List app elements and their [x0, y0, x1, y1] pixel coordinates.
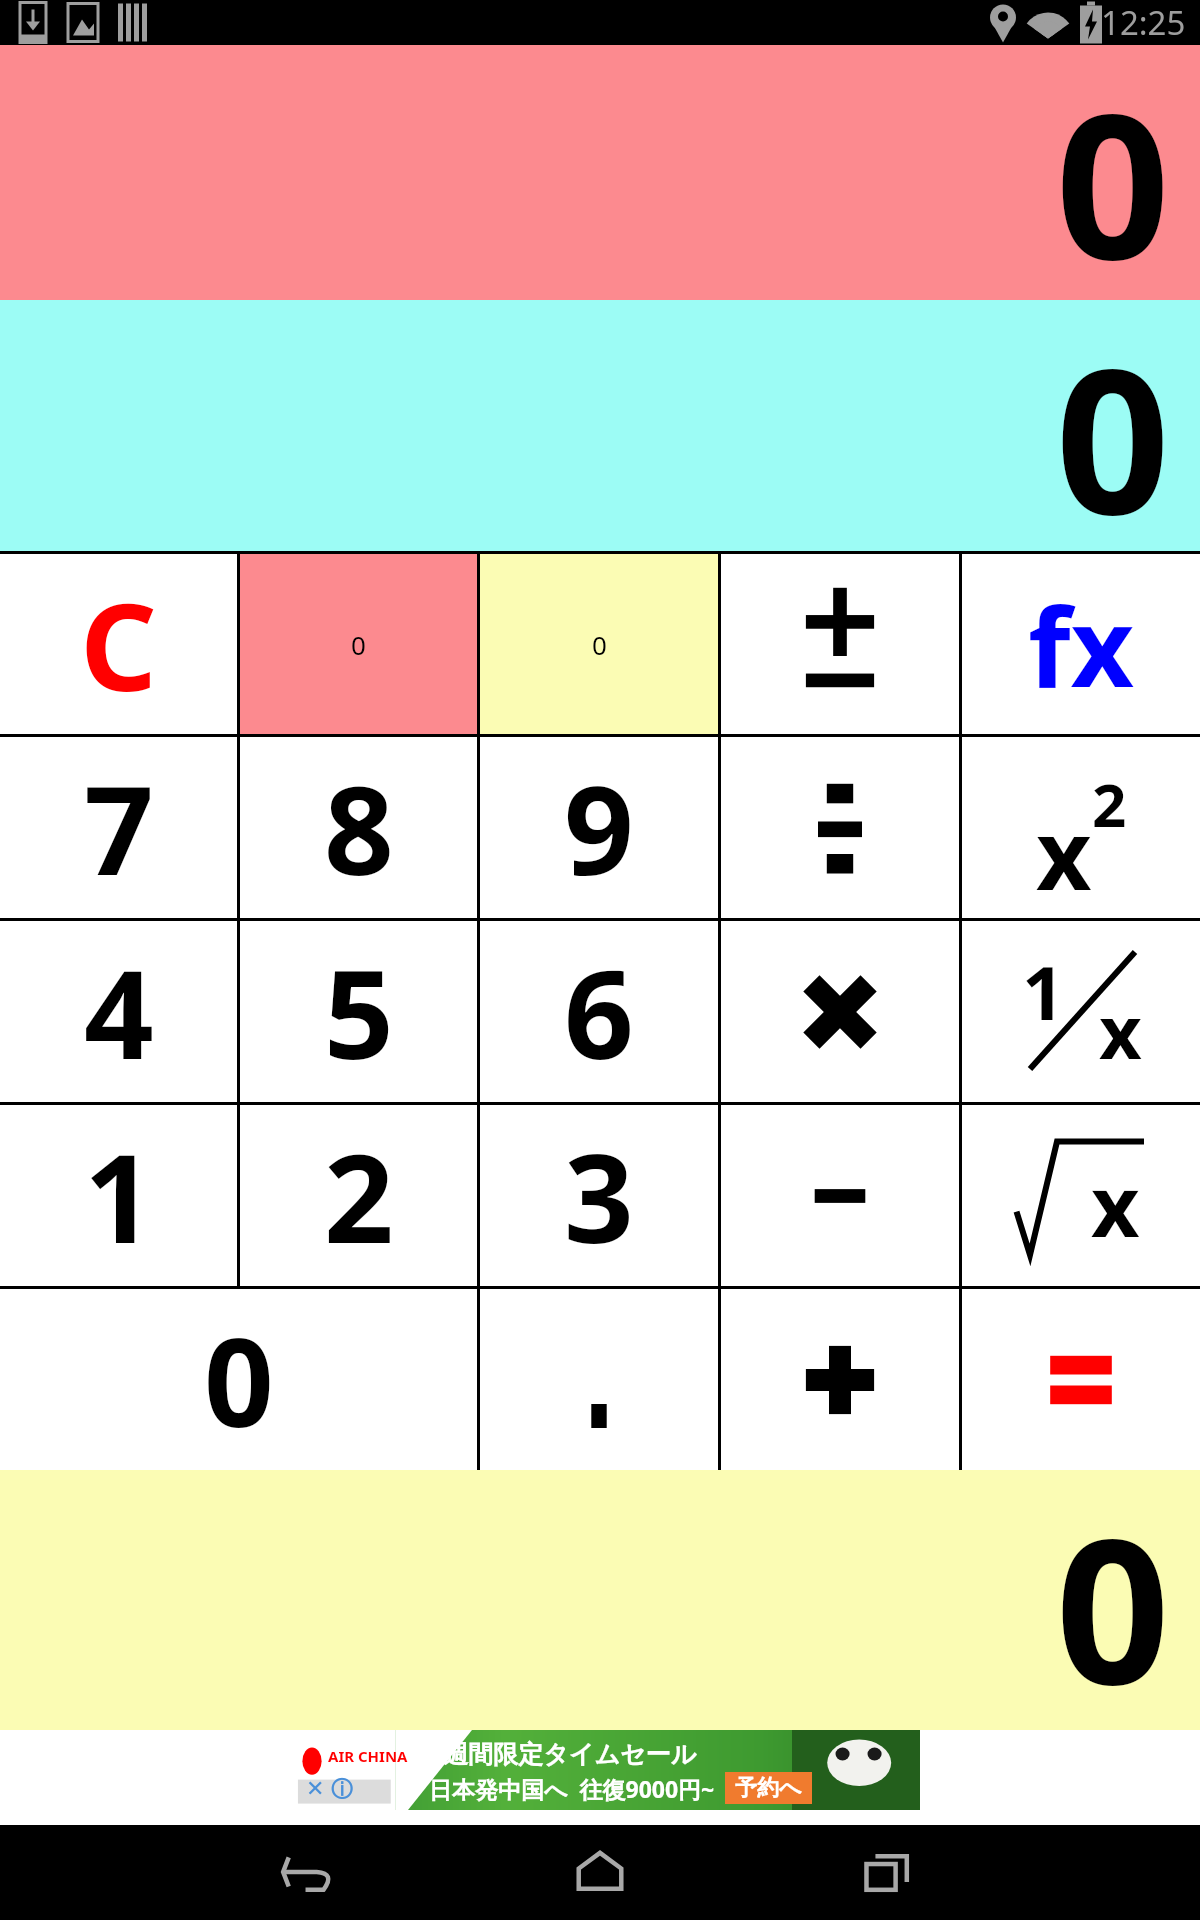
- staticText: 7: [84, 745, 154, 911]
- staticText: x: [1099, 980, 1142, 1081]
- button[interactable]: clear: [0, 554, 237, 734]
- staticText: 0: [0, 45, 1170, 300]
- button[interactable]: square root: [962, 1105, 1200, 1286]
- staticText: 8: [324, 745, 394, 911]
- button[interactable]: 3: [480, 1105, 718, 1286]
- button[interactable]: 8: [240, 737, 477, 918]
- staticText: ✕: [306, 1776, 325, 1802]
- button[interactable]: Home: [550, 1825, 650, 1920]
- staticText: x: [1091, 1147, 1140, 1261]
- staticText: 1: [84, 1113, 154, 1279]
- button[interactable]: plus: [721, 1289, 959, 1470]
- button[interactable]: minus: [721, 1105, 959, 1286]
- button[interactable]: 4: [0, 921, 237, 1102]
- button[interactable]: 5: [240, 921, 477, 1102]
- button[interactable]: 0: [0, 1289, 477, 1470]
- staticText: ⓘ: [331, 1776, 353, 1804]
- staticText: 2週間限定タイムセール: [429, 1736, 697, 1770]
- staticText: 5: [324, 929, 394, 1095]
- button[interactable]: 2: [240, 1105, 477, 1286]
- staticText: 4: [84, 929, 154, 1095]
- button[interactable]: Back: [260, 1825, 360, 1920]
- button[interactable]: multiply: [721, 921, 959, 1102]
- staticText: 12:25: [1101, 0, 1186, 45]
- staticText: 6: [564, 929, 634, 1095]
- button[interactable]: functions: [962, 554, 1200, 734]
- button[interactable]: Recent apps: [840, 1825, 940, 1920]
- button[interactable]: divide: [721, 737, 959, 918]
- button[interactable]: 6: [480, 921, 718, 1102]
- staticText: 2: [1092, 763, 1127, 845]
- staticText: 1: [1022, 941, 1065, 1042]
- button[interactable]: Advertisement Air China: [280, 1730, 920, 1810]
- staticText: 0: [204, 1297, 274, 1463]
- staticText: 9: [564, 745, 634, 911]
- staticText: 0: [0, 1470, 1170, 1730]
- staticText: 2: [324, 1113, 394, 1279]
- button[interactable]: plus minus: [721, 554, 959, 734]
- staticText: C: [80, 563, 158, 726]
- button[interactable]: x squared: [962, 737, 1200, 918]
- staticText: 0: [351, 627, 366, 662]
- staticText: 日本発中国へ 往復9000円~: [429, 1773, 715, 1804]
- staticText: 予約へ: [735, 1774, 802, 1802]
- button[interactable]: memory yellow: [480, 554, 718, 734]
- button[interactable]: 1: [0, 1105, 237, 1286]
- button[interactable]: memory pink: [240, 554, 477, 734]
- button[interactable]: equals: [962, 1289, 1200, 1470]
- staticText: fx: [1028, 569, 1135, 719]
- staticText: AIR CHINA: [328, 1746, 408, 1766]
- button[interactable]: 7: [0, 737, 237, 918]
- button[interactable]: decimal point: [480, 1289, 718, 1470]
- staticText: 0: [0, 300, 1170, 551]
- button[interactable]: reciprocal: [962, 921, 1200, 1102]
- staticText: 0: [592, 627, 607, 662]
- button[interactable]: 9: [480, 737, 718, 918]
- staticText: x: [1036, 787, 1092, 917]
- staticText: 3: [564, 1113, 634, 1279]
